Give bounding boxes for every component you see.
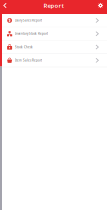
button[interactable]: Settings (94, 0, 107, 11)
staticText: Item Sales Report (15, 58, 42, 62)
staticText: Report (43, 1, 63, 9)
button[interactable]: Item Sales Report (0, 54, 107, 67)
button[interactable]: Inventory Stock Report (0, 27, 107, 41)
staticText: Daily Sales Report (15, 18, 42, 22)
button[interactable]: Daily Sales Report (0, 14, 107, 27)
staticText: Inventory Stock Report (15, 32, 48, 36)
button[interactable]: Stock Check (0, 41, 107, 54)
staticText: Stock Check (15, 45, 33, 49)
button[interactable]: Back (0, 0, 10, 11)
